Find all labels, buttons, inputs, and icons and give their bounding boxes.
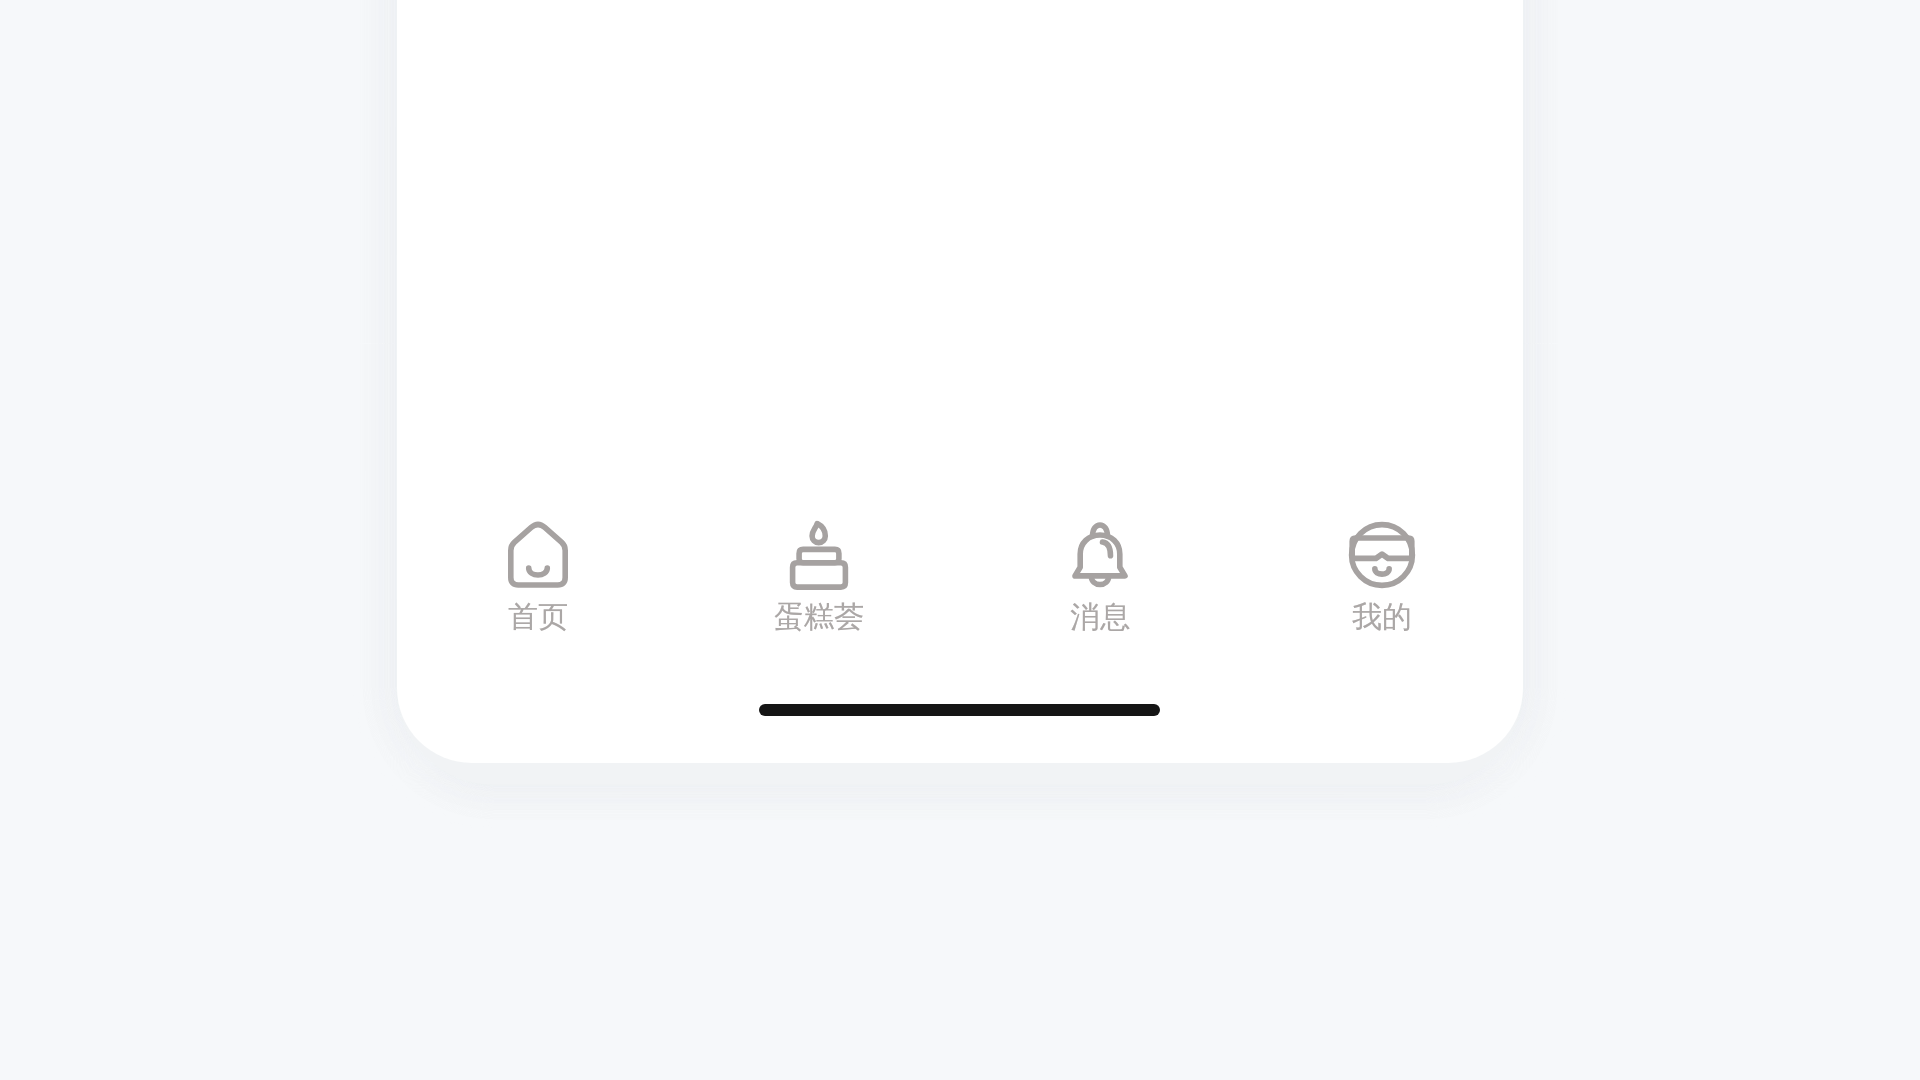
staticText: 蛋糕荟: [774, 598, 864, 636]
button[interactable]: 消息: [959, 492, 1241, 657]
button[interactable]: 首页: [397, 492, 678, 657]
staticText: 首页: [508, 598, 568, 636]
button[interactable]: 我的: [1241, 492, 1523, 657]
staticText: 我的: [1352, 598, 1412, 636]
button[interactable]: 蛋糕荟: [678, 492, 959, 657]
staticText: 消息: [1070, 598, 1130, 636]
